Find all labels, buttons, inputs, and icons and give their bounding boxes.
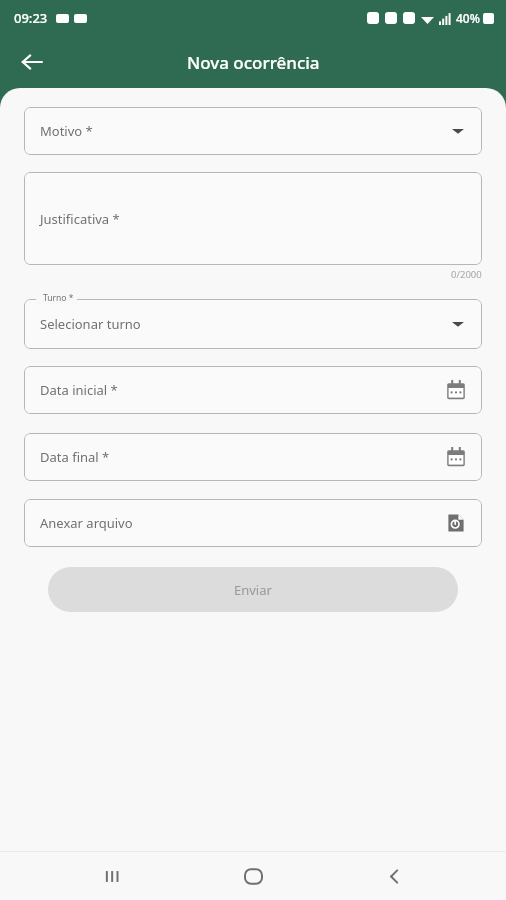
- button[interactable]: Data final *: [24, 433, 482, 481]
- button[interactable]: Recentes: [85, 852, 141, 900]
- staticText: Enviar: [234, 581, 272, 599]
- other: Selecionar data: [446, 447, 466, 467]
- staticText: Data inicial *: [40, 381, 446, 399]
- button[interactable]: Justificativa *: [24, 172, 482, 265]
- staticText: 09:23: [14, 9, 48, 27]
- button[interactable]: Enviar: [48, 567, 458, 612]
- button[interactable]: Anexar arquivo: [24, 499, 482, 547]
- button[interactable]: Motivo *: [24, 107, 482, 155]
- staticText: Nova ocorrência: [187, 51, 320, 74]
- staticText: Turno *: [43, 292, 74, 304]
- staticText: Data final *: [40, 448, 446, 466]
- staticText: Anexar arquivo: [40, 514, 446, 532]
- button[interactable]: Data inicial *: [24, 366, 482, 414]
- staticText: 40%: [456, 10, 480, 26]
- button[interactable]: Voltar: [10, 40, 54, 84]
- button[interactable]: Voltar: [366, 852, 422, 900]
- button[interactable]: Selecionar turno: [24, 299, 482, 349]
- staticText: Selecionar turno: [40, 315, 452, 333]
- staticText: 0/2000: [451, 268, 482, 281]
- other: Selecionar data: [446, 380, 466, 400]
- staticText: Motivo *: [40, 122, 452, 140]
- other: Anexar arquivo: [446, 513, 466, 533]
- staticText: Justificativa *: [40, 210, 120, 228]
- button[interactable]: Início: [225, 852, 281, 900]
